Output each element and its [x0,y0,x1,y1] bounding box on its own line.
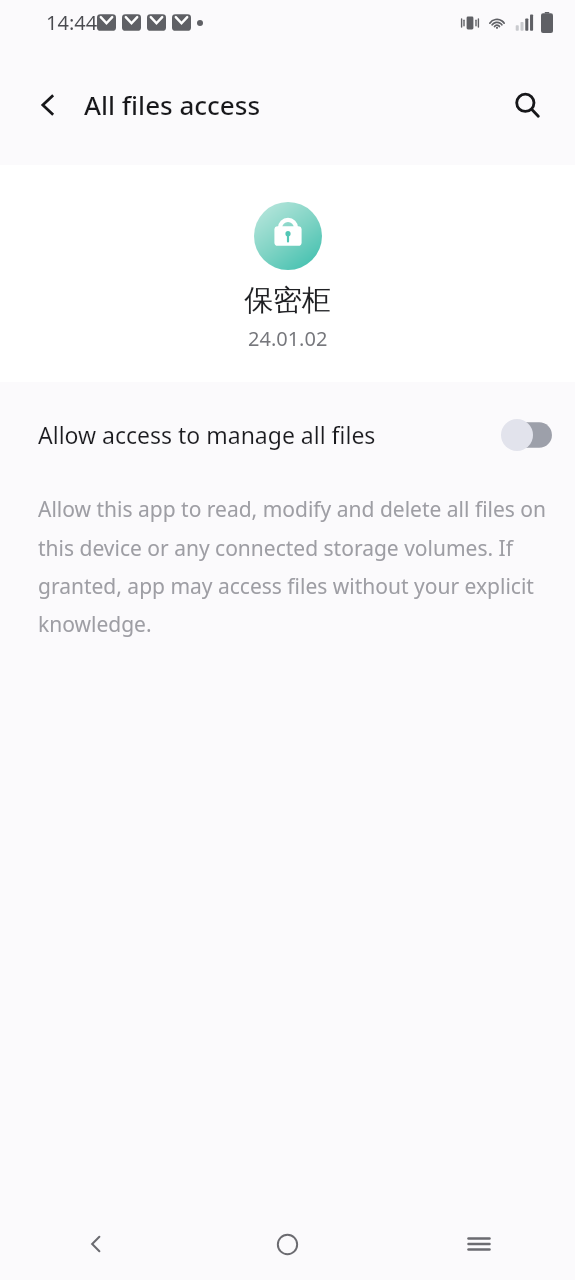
button[interactable]: Home [191,1208,383,1280]
button[interactable]: Back [24,81,72,129]
button[interactable]: Back [0,1208,191,1280]
button[interactable]: Search [503,81,551,129]
staticText: Allow access to manage all files [38,419,501,450]
button[interactable]: Recent apps [383,1208,575,1280]
button[interactable]: Allow access to manage all files [0,382,575,487]
staticText: All files access [84,87,261,122]
staticText: 14:44 [46,9,98,36]
staticText: 保密柜 [244,282,331,319]
staticText: 24.01.02 [248,325,328,352]
staticText: Allow this app to read, modify and delet… [38,495,549,638]
other: Allow access to manage all files toggle [501,419,553,451]
